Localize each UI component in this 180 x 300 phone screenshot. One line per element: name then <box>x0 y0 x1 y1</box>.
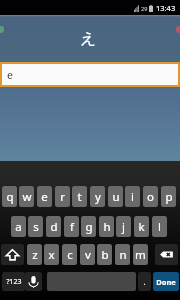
staticText: x <box>48 247 55 263</box>
button[interactable]: h <box>99 216 114 237</box>
button[interactable]: t <box>72 186 87 207</box>
button[interactable]: z <box>27 244 42 265</box>
staticText: t <box>77 189 82 205</box>
button[interactable]: i <box>125 186 140 207</box>
staticText: c <box>67 247 73 263</box>
staticText: w <box>22 189 32 205</box>
button[interactable]: o <box>143 186 158 207</box>
staticText: m <box>135 247 146 263</box>
button[interactable]: q <box>2 186 17 207</box>
staticText: y <box>95 189 101 205</box>
staticText: . <box>143 276 146 287</box>
staticText: d <box>50 219 58 235</box>
staticText: q <box>6 189 14 205</box>
button[interactable]: w <box>19 186 34 207</box>
staticText: s <box>33 219 39 235</box>
button[interactable]: f <box>64 216 79 237</box>
button[interactable]: b <box>97 244 112 265</box>
staticText: 29 <box>141 5 148 12</box>
button[interactable]: ?123 <box>2 272 25 291</box>
staticText: p <box>165 189 173 205</box>
button[interactable]: x <box>44 244 59 265</box>
staticText: l <box>158 219 161 235</box>
button[interactable]: p <box>161 186 176 207</box>
staticText: Done <box>156 277 176 287</box>
staticText: k <box>138 219 145 235</box>
staticText: b <box>101 247 109 263</box>
staticText: e <box>41 189 48 205</box>
staticText: n <box>119 247 127 263</box>
button[interactable]: m <box>133 244 148 265</box>
button[interactable]: c <box>62 244 77 265</box>
staticText: ?123 <box>6 277 22 287</box>
staticText: a <box>15 219 22 235</box>
button[interactable]: k <box>134 216 149 237</box>
staticText: z <box>32 247 38 263</box>
button[interactable]: Voice input <box>25 272 42 291</box>
button[interactable]: e <box>37 186 52 207</box>
button[interactable]: r <box>55 186 70 207</box>
staticText: v <box>85 247 91 263</box>
button[interactable]: s <box>28 216 43 237</box>
staticText: h <box>103 219 111 235</box>
button[interactable]: . <box>138 272 151 291</box>
staticText: g <box>85 219 93 235</box>
staticText: r <box>60 189 65 205</box>
button[interactable]: Shift <box>1 244 24 265</box>
staticText: u <box>112 189 120 205</box>
button[interactable]: a <box>11 216 26 237</box>
button[interactable]: d <box>46 216 61 237</box>
staticText: j <box>122 219 125 235</box>
staticText: 13:43 <box>156 3 176 13</box>
staticText: i <box>131 189 134 205</box>
button[interactable]: j <box>116 216 131 237</box>
button[interactable]: u <box>108 186 123 207</box>
button[interactable]: g <box>81 216 96 237</box>
staticText: e <box>7 67 13 82</box>
button[interactable]: Next <box>176 26 180 33</box>
staticText: o <box>147 189 154 205</box>
button[interactable]: y <box>90 186 105 207</box>
button[interactable]: n <box>115 244 130 265</box>
button[interactable]: v <box>80 244 95 265</box>
staticText: え <box>80 29 97 49</box>
button[interactable]: Done <box>153 272 179 291</box>
button[interactable]: Backspace <box>155 244 178 265</box>
button[interactable]: l <box>152 216 167 237</box>
button[interactable]: e <box>2 64 178 85</box>
button[interactable]: Previous <box>0 26 4 33</box>
staticText: f <box>70 219 74 235</box>
